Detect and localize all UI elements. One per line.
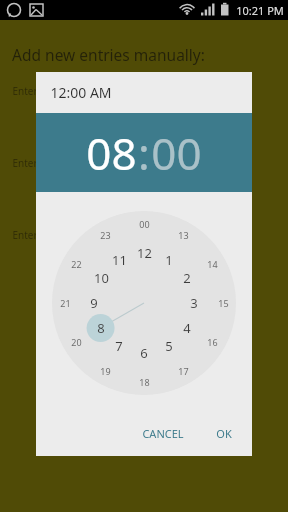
staticText: Enter xyxy=(12,84,38,98)
button[interactable]: Select hour on 24 hour dial xyxy=(36,192,252,410)
button[interactable]: 08 xyxy=(86,123,137,183)
button[interactable]: CANCEL xyxy=(132,419,194,448)
staticText: : xyxy=(138,123,150,183)
button[interactable]: OK xyxy=(206,419,242,448)
button[interactable]: 00 xyxy=(151,123,202,183)
staticText: 3 xyxy=(190,294,198,312)
staticText: 10:21 PM xyxy=(236,3,284,18)
staticText: 19 xyxy=(100,365,111,377)
staticText: 08 xyxy=(86,123,137,183)
staticText: 2 xyxy=(183,269,191,287)
staticText: 9 xyxy=(90,294,98,312)
staticText: 21 xyxy=(60,297,71,309)
staticText: 14 xyxy=(207,258,218,270)
staticText: 23 xyxy=(100,229,111,241)
staticText: 12 xyxy=(137,244,152,262)
staticText: 17 xyxy=(178,365,189,377)
staticText: 15 xyxy=(218,297,229,309)
staticText: Enter xyxy=(12,156,38,170)
staticText: 16 xyxy=(207,336,218,348)
button[interactable]: 12:00 AM xyxy=(36,72,252,113)
staticText: 11 xyxy=(112,251,127,269)
staticText: CANCEL xyxy=(142,426,184,441)
staticText: 13 xyxy=(178,229,189,241)
staticText: 20 xyxy=(71,336,82,348)
staticText: OK xyxy=(216,426,232,441)
staticText: 7 xyxy=(115,337,123,355)
staticText: 4 xyxy=(183,319,191,337)
staticText: 5 xyxy=(165,337,173,355)
staticText: 6 xyxy=(140,344,148,362)
staticText: 22 xyxy=(71,258,82,270)
staticText: 12:00 AM xyxy=(50,83,112,102)
staticText: 1 xyxy=(165,251,173,269)
staticText: 00 xyxy=(151,123,202,183)
staticText: Add new entries manually: xyxy=(12,44,205,65)
staticText: Enter xyxy=(12,228,38,242)
staticText: 00 xyxy=(139,218,150,230)
staticText: 10 xyxy=(94,269,109,287)
staticText: 8 xyxy=(97,319,105,337)
staticText: 18 xyxy=(139,376,150,388)
